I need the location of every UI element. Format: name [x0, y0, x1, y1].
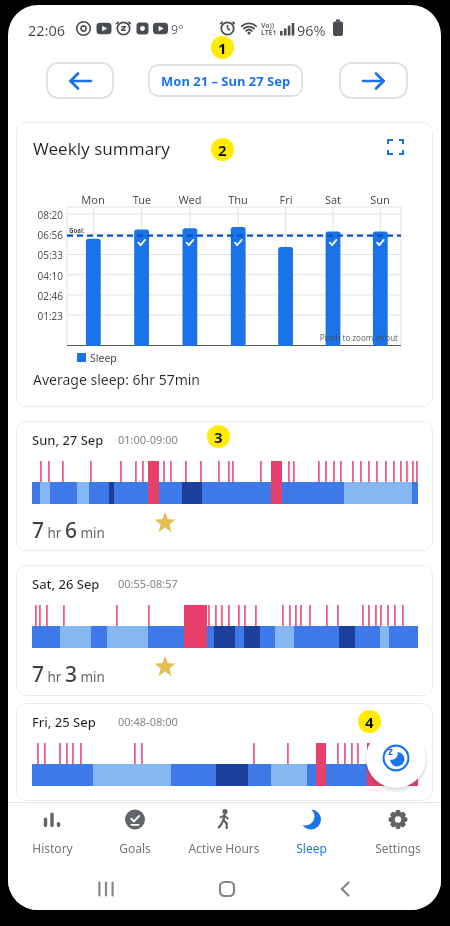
staticText: 2 [218, 140, 227, 160]
staticText: Weekly summary [33, 137, 170, 160]
staticText: 1 [218, 38, 227, 58]
button[interactable] [16, 703, 433, 801]
button[interactable]: History [12, 804, 92, 862]
button[interactable] [82, 871, 130, 907]
staticText: Settings [375, 840, 421, 856]
staticText: 04:10 [30, 269, 63, 283]
button[interactable]: Sleep [271, 804, 351, 862]
button[interactable] [339, 62, 408, 99]
staticText: Active Hours [188, 840, 260, 856]
staticText: Sun [363, 192, 397, 207]
button[interactable] [16, 565, 433, 696]
button[interactable]: Settings [358, 804, 438, 862]
staticText: Sat, 26 Sep [32, 575, 100, 593]
button[interactable]: z [366, 728, 426, 788]
button[interactable] [321, 871, 369, 907]
staticText: Wed [173, 192, 207, 207]
staticText: Sat [316, 192, 350, 207]
staticText: LTE1 [261, 28, 277, 37]
button[interactable] [16, 421, 433, 551]
staticText: 3 [214, 427, 223, 447]
staticText: Goals [119, 840, 151, 856]
button[interactable]: Active Hours [184, 804, 264, 862]
staticText: z [388, 744, 393, 758]
staticText: Fri, 25 Sep [32, 713, 96, 731]
button[interactable] [203, 871, 251, 907]
staticText: 7 hr 6 min [32, 516, 105, 545]
staticText: Mon 21 – Sun 27 Sep [161, 72, 291, 90]
button[interactable] [16, 122, 433, 407]
staticText: 22:06 [28, 20, 66, 40]
staticText: 01:00-09:00 [118, 432, 178, 447]
staticText: Vo)) [261, 21, 275, 30]
staticText: Tue [125, 192, 159, 207]
staticText: 00:55-08:57 [118, 576, 178, 591]
button[interactable] [382, 133, 410, 161]
staticText: 08:20 [30, 208, 63, 222]
button[interactable]: Mon 21 – Sun 27 Sep [148, 64, 303, 97]
staticText: Thu [221, 192, 255, 207]
staticText: Sleep [90, 351, 117, 365]
staticText: Sleep [296, 840, 327, 856]
staticText: 01:23 [30, 309, 63, 323]
button[interactable] [46, 62, 114, 99]
staticText: 7 hr 3 min [32, 660, 105, 689]
staticText: 4 [365, 712, 374, 732]
staticText: 00:48-08:00 [118, 714, 178, 729]
staticText: Pinch to zoom in/out [290, 332, 398, 343]
staticText: Goal: [69, 226, 85, 234]
staticText: Sun, 27 Sep [32, 431, 104, 449]
staticText: History [32, 840, 73, 856]
staticText: 06:56 [30, 228, 63, 242]
staticText: Average sleep: 6hr 57min [33, 370, 201, 389]
staticText: 02:46 [30, 289, 63, 303]
button[interactable]: Goals [95, 804, 175, 862]
staticText: Mon [76, 192, 110, 207]
staticText: 96% [297, 20, 326, 40]
staticText: Fri [269, 192, 303, 207]
staticText: 05:33 [30, 248, 63, 262]
staticText: 9° [171, 21, 184, 38]
